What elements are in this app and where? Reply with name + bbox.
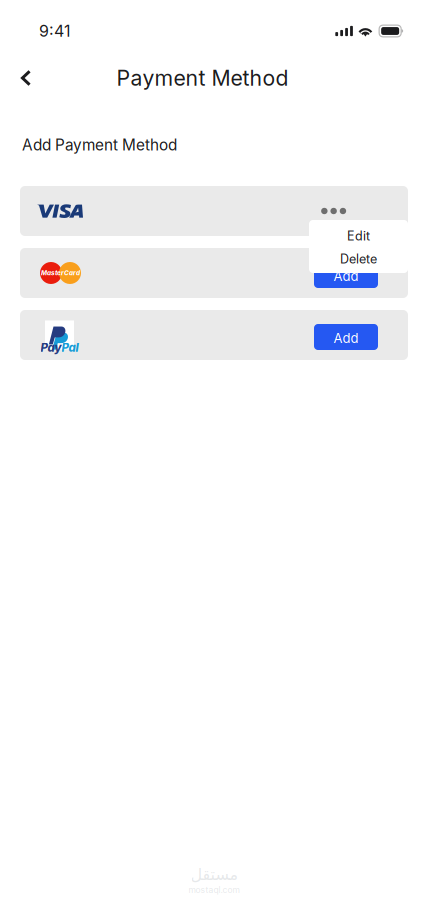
button[interactable]: Add xyxy=(314,260,378,286)
staticText: Delete xyxy=(340,251,377,267)
staticText: Payment Method xyxy=(116,65,288,91)
staticText: Pal xyxy=(61,341,78,354)
button[interactable]: Edit xyxy=(309,220,408,252)
staticText: مستقل xyxy=(190,865,238,884)
staticText: MasterCard xyxy=(41,269,80,277)
staticText: 9:41 xyxy=(39,21,71,41)
staticText: Add xyxy=(333,268,358,284)
staticText: Add xyxy=(333,330,358,346)
button[interactable]: Add xyxy=(314,322,378,348)
button[interactable]: Back xyxy=(6,58,46,98)
staticText: Pay xyxy=(40,341,61,354)
staticText: mostaql.com xyxy=(188,885,239,895)
staticText: Edit xyxy=(347,228,370,244)
button[interactable]: More options xyxy=(321,199,346,223)
button[interactable]: Delete xyxy=(309,252,408,266)
staticText: Add Payment Method xyxy=(22,136,177,154)
